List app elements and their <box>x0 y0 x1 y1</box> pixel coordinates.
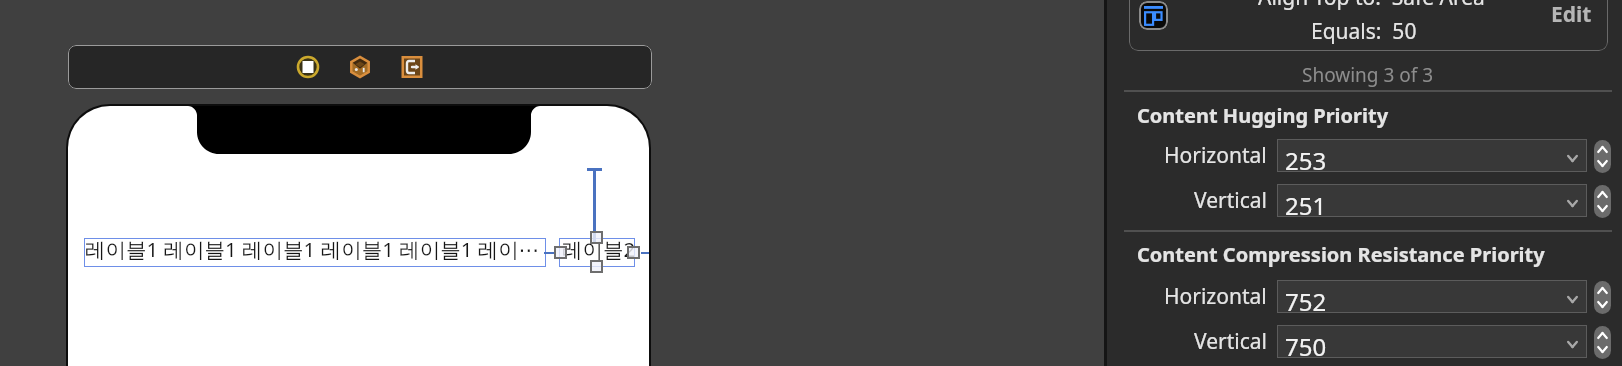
button[interactable]: 750 <box>1277 325 1587 358</box>
button[interactable]: 253 <box>1277 139 1587 172</box>
staticText: Align Top to: Safe Area <box>1258 0 1485 12</box>
staticText: 253 <box>1285 144 1327 177</box>
button[interactable]: First Responder <box>346 53 374 81</box>
staticText: Showing 3 of 3 <box>1302 62 1434 88</box>
button[interactable]: 레이블1 레이블1 레이블1 레이블1 레이블1 레이⋯ <box>84 238 546 267</box>
staticText: Equals: 50 <box>1311 17 1417 46</box>
other: Constraint <box>1139 1 1168 30</box>
staticText: 251 <box>1285 189 1327 222</box>
staticText: 752 <box>1285 285 1327 318</box>
button[interactable]: View Controller <box>294 53 322 81</box>
staticText: Vertical <box>1194 327 1267 356</box>
staticText: 레이블1 레이블1 레이블1 레이블1 레이블1 레이⋯ <box>85 235 540 263</box>
button[interactable]: Edit <box>1544 0 1598 32</box>
button[interactable]: Stepper <box>1594 326 1611 359</box>
staticText: 750 <box>1285 330 1327 363</box>
staticText: Edit <box>1551 0 1592 29</box>
button[interactable]: Constraint <box>1129 0 1608 51</box>
staticText: Vertical <box>1194 186 1267 215</box>
staticText: Horizontal <box>1164 282 1267 311</box>
button[interactable]: Exit <box>398 53 426 81</box>
button[interactable]: 752 <box>1277 280 1587 313</box>
button[interactable]: Stepper <box>1594 185 1611 218</box>
staticText: Content Compression Resistance Priority <box>1137 241 1545 268</box>
button[interactable]: 251 <box>1277 184 1587 217</box>
button[interactable]: Stepper <box>1594 281 1611 314</box>
button[interactable]: 레이블2 <box>559 238 635 267</box>
staticText: 레이블2 <box>562 235 636 263</box>
staticText: Horizontal <box>1164 141 1267 170</box>
button[interactable]: Stepper <box>1594 140 1611 173</box>
staticText: Content Hugging Priority <box>1137 102 1389 129</box>
